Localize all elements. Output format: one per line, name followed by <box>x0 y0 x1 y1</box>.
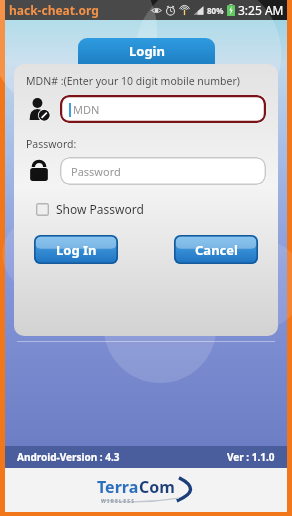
staticText: Android-Version : 4.3 <box>17 450 120 464</box>
staticText: W I R E L E S S <box>101 498 135 505</box>
staticText: Log In <box>56 241 97 259</box>
button[interactable]: MDN <box>60 95 266 123</box>
staticText: Ver : 1.1.0 <box>227 450 275 464</box>
button[interactable]: Login <box>78 38 215 64</box>
staticText: Terra <box>97 476 139 498</box>
staticText: MDN <box>73 102 100 117</box>
button[interactable]: Password <box>60 157 266 185</box>
staticText: Cancel <box>195 241 238 259</box>
staticText: Login <box>129 42 165 60</box>
staticText: MDN# :(Enter your 10 digit mobile number… <box>26 74 240 88</box>
staticText: Show Password <box>56 201 144 217</box>
button[interactable]: Cancel <box>174 235 258 264</box>
button[interactable]: Show Password <box>36 201 144 217</box>
staticText: Password <box>71 164 121 179</box>
staticText: Com <box>139 476 175 498</box>
staticText: 80% <box>207 5 224 16</box>
staticText: 3:25 AM <box>238 2 284 18</box>
button[interactable]: Log In <box>34 235 118 264</box>
staticText: hack-cheat.org <box>9 2 99 18</box>
staticText: Password: <box>26 137 77 151</box>
